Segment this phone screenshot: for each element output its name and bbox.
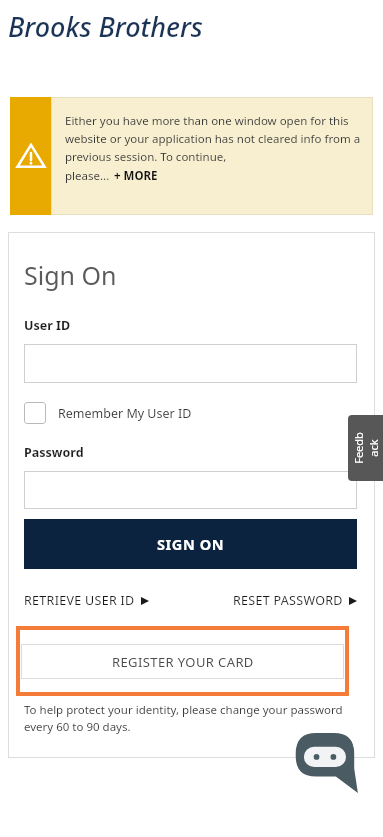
staticText: REGISTER YOUR CARD	[112, 653, 254, 671]
button[interactable]: Chat with us	[293, 729, 361, 797]
staticText: Feedback	[350, 430, 380, 465]
staticText: To help protect your identity, please ch…	[24, 702, 343, 734]
staticText: Brooks Brothers	[8, 8, 203, 45]
button[interactable]: Remember My User ID	[24, 402, 192, 424]
button[interactable]: + MORE	[114, 168, 158, 184]
staticText: + MORE	[114, 168, 158, 184]
button[interactable]: Brooks Brothers home	[8, 6, 203, 46]
staticText: RESET PASSWORD	[233, 592, 343, 609]
staticText: User ID	[24, 317, 71, 334]
staticText: Sign On	[24, 258, 117, 292]
button[interactable]: SIGN ON	[24, 519, 357, 569]
staticText: SIGN ON	[157, 534, 225, 554]
staticText: Either you have more than one window ope…	[65, 113, 363, 164]
button[interactable]: RESET PASSWORD	[233, 592, 357, 609]
button[interactable]: REGISTER YOUR CARD	[16, 626, 349, 696]
button[interactable]: RETRIEVE USER ID	[24, 592, 149, 609]
button[interactable]: Feedback	[348, 415, 383, 481]
button[interactable]: Password input	[24, 471, 357, 509]
staticText: Password	[24, 444, 84, 461]
button[interactable]: User ID input	[24, 344, 357, 383]
staticText: Remember My User ID	[58, 405, 192, 422]
staticText: please...	[65, 168, 110, 184]
staticText: RETRIEVE USER ID	[24, 592, 135, 609]
